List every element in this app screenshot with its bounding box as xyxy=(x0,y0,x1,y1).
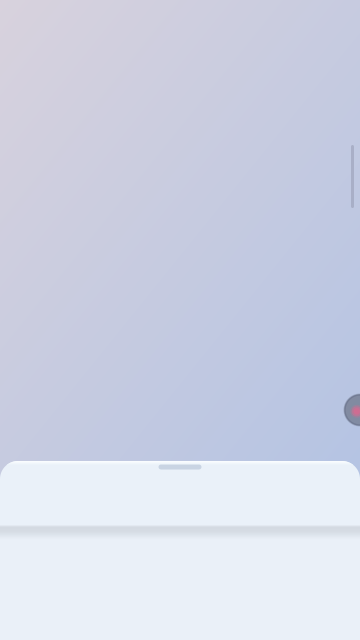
button[interactable]: Sheet grabber xyxy=(0,461,360,527)
